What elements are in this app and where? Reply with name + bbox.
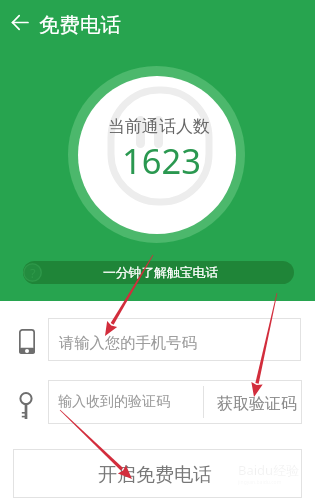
- staticText: Baidu经验: [238, 461, 300, 479]
- staticText: 开启免费电话: [98, 463, 212, 487]
- staticText: 免费电话: [39, 12, 121, 38]
- staticText: 请输入您的手机号码: [59, 333, 197, 352]
- staticText: 1623: [122, 137, 201, 184]
- button[interactable]: 获取验证码: [207, 380, 301, 424]
- button[interactable]: 请输入您的手机号码: [48, 318, 301, 361]
- staticText: 当前通话人数: [108, 116, 210, 137]
- staticText: ?: [30, 264, 36, 282]
- button[interactable]: Back: [3, 5, 37, 39]
- button[interactable]: 开启免费电话: [13, 449, 302, 498]
- staticText: 获取验证码: [217, 394, 297, 414]
- button[interactable]: 输入收到的验证码: [48, 380, 203, 424]
- button[interactable]: ?: [23, 261, 294, 284]
- staticText: 一分钟了解触宝电话: [103, 265, 219, 281]
- staticText: 输入收到的验证码: [58, 393, 170, 411]
